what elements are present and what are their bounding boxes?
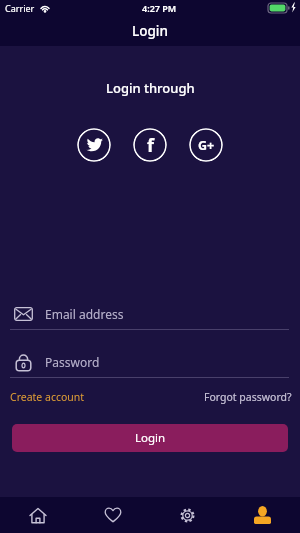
- staticText: 4:27 PM: [142, 2, 177, 14]
- button[interactable]: Login: [12, 424, 288, 452]
- staticText: Password: [45, 354, 100, 370]
- staticText: G+: [198, 137, 215, 154]
- button[interactable]: f: [133, 128, 167, 162]
- button[interactable]: [77, 128, 111, 162]
- staticText: Login: [132, 22, 168, 40]
- button[interactable]: [150, 497, 225, 533]
- button[interactable]: Forgot password?: [204, 390, 292, 404]
- staticText: Email address: [45, 306, 124, 322]
- staticText: Carrier: [5, 2, 35, 14]
- button[interactable]: [225, 497, 300, 533]
- staticText: f: [147, 133, 154, 158]
- button[interactable]: G+: [189, 128, 223, 162]
- button[interactable]: [75, 497, 150, 533]
- staticText: Forgot password?: [204, 390, 292, 404]
- button[interactable]: Create account: [10, 390, 85, 404]
- staticText: Login: [135, 430, 166, 446]
- staticText: Login through: [106, 79, 195, 97]
- button[interactable]: [0, 497, 75, 533]
- staticText: Create account: [10, 390, 85, 404]
